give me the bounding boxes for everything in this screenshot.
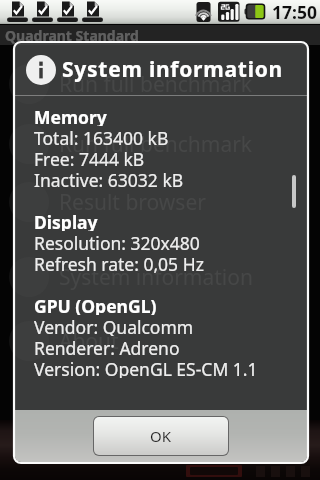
staticText: About [59, 327, 119, 356]
staticText: Refresh rate: 0,05 Hz [34, 252, 204, 273]
staticText: System information [62, 55, 283, 84]
staticText: Result browser [59, 188, 206, 217]
staticText: Run full benchmark [59, 130, 253, 159]
staticText: Display [34, 210, 98, 231]
staticText: 17:50 [272, 0, 317, 24]
staticText: System information [59, 263, 253, 292]
button[interactable]: Result browser [9, 180, 311, 224]
button[interactable]: Run full benchmark [9, 122, 311, 166]
button[interactable]: Run full benchmark [9, 62, 311, 106]
staticText: Total: 163400 kB [34, 126, 169, 147]
other: Information [26, 55, 56, 85]
button[interactable]: About [9, 319, 311, 363]
staticText: GPU (OpenGL) [34, 294, 157, 315]
staticText: Run full benchmark [59, 70, 253, 99]
staticText: Vendor: Qualcomm [34, 315, 194, 336]
button[interactable]: System information [9, 255, 311, 299]
staticText: Memory [34, 105, 107, 126]
staticText: Free: 7444 kB [34, 147, 145, 168]
staticText: Inactive: 63032 kB [34, 168, 184, 189]
staticText: Renderer: Adreno [34, 336, 180, 357]
button[interactable]: OK [94, 417, 228, 455]
staticText: Resolution: 320x480 [34, 231, 200, 252]
staticText: OK [150, 426, 172, 446]
staticText: Version: OpenGL ES-CM 1.1 [34, 357, 258, 378]
staticText: Quadrant Standard [5, 26, 139, 45]
